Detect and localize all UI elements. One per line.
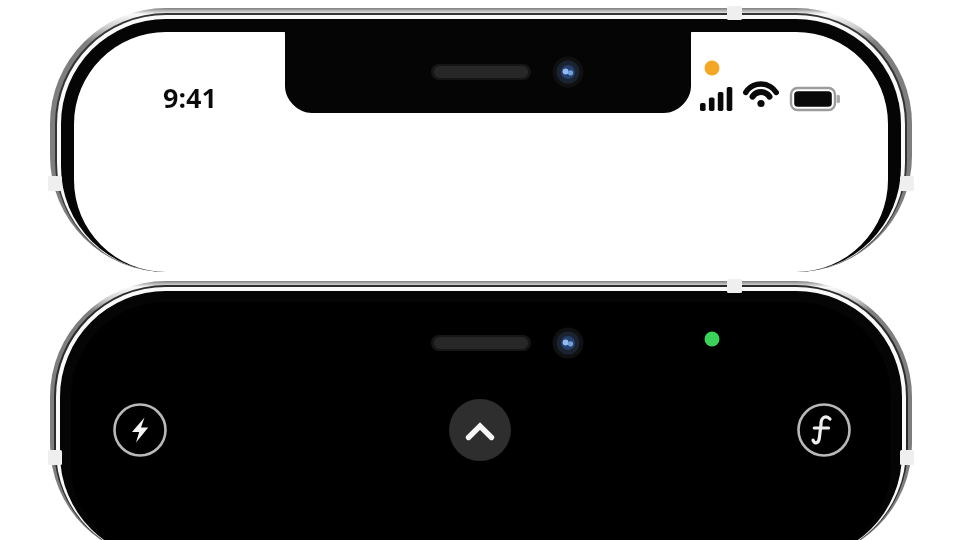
button[interactable]: Photographic styles [797, 403, 851, 457]
button[interactable]: Flash [113, 403, 167, 457]
button[interactable]: Show camera controls [449, 399, 511, 461]
staticText: 9:41 [163, 79, 217, 116]
